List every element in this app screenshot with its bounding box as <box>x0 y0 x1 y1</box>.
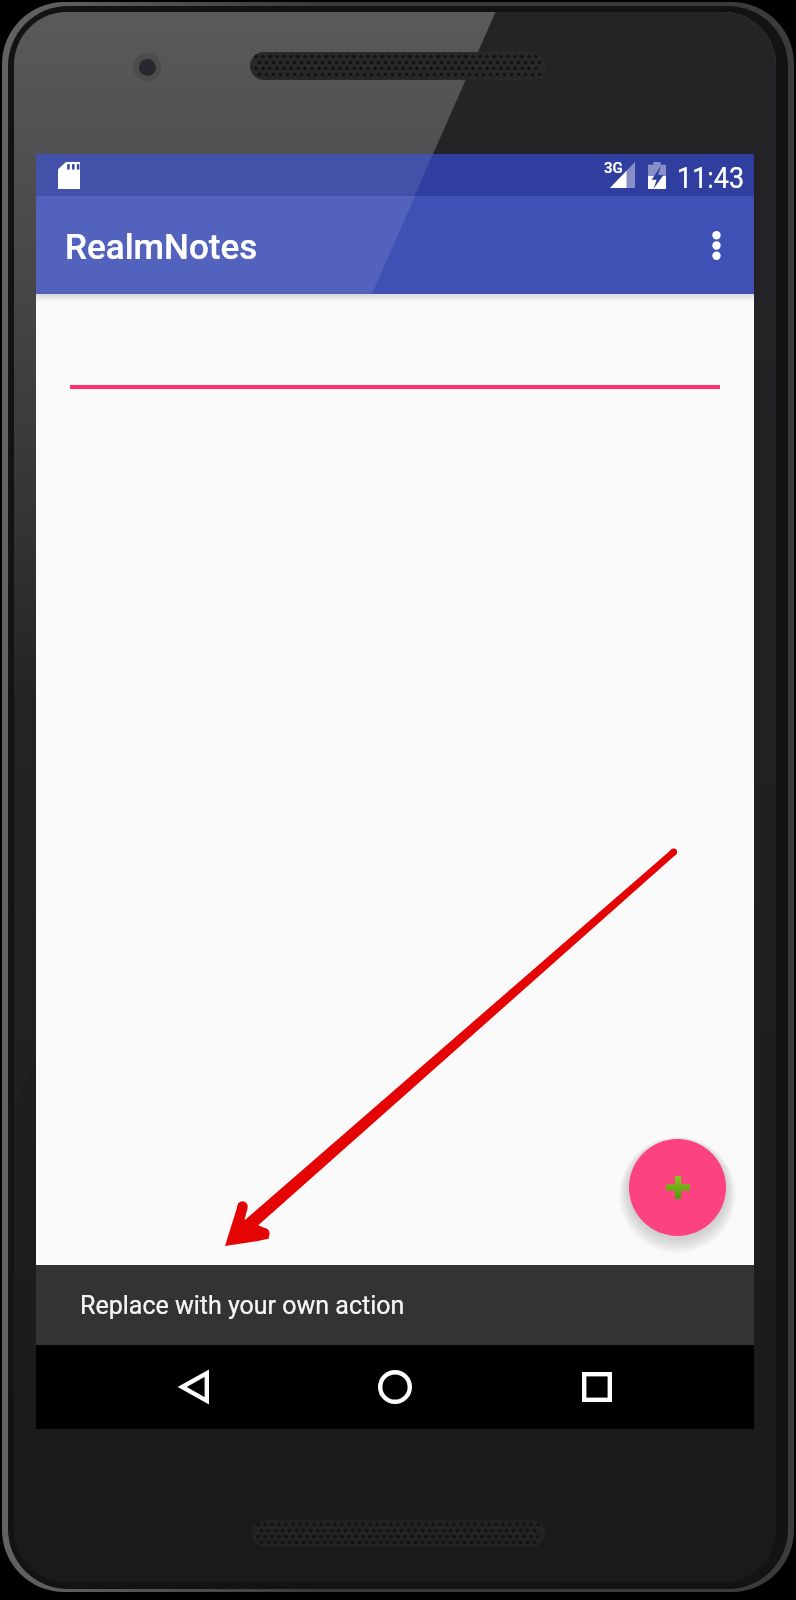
button[interactable]: Home <box>345 1345 445 1429</box>
button[interactable]: Recent apps <box>547 1345 647 1429</box>
staticText: Replace with your own action <box>80 1291 405 1320</box>
button[interactable]: Back <box>144 1345 244 1429</box>
button[interactable]: Replace with your own action <box>36 1265 754 1345</box>
button[interactable]: Add note <box>629 1139 726 1236</box>
staticText: 3G <box>604 159 623 177</box>
staticText: 11:43 <box>677 161 745 195</box>
staticText: RealmNotes <box>65 227 258 268</box>
button[interactable]: More options <box>678 196 754 294</box>
